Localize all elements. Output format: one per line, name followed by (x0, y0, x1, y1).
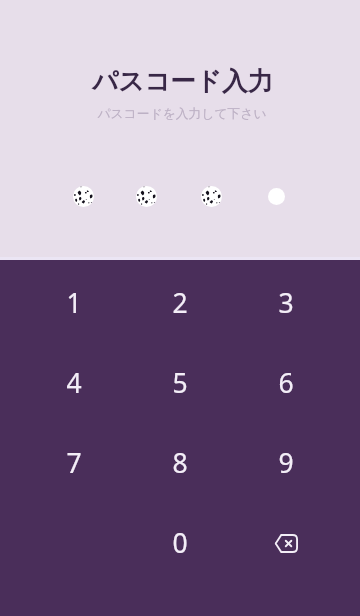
button[interactable]: 9 (233, 423, 339, 503)
staticText: パスコード入力 (92, 65, 273, 97)
staticText: 8 (172, 445, 188, 481)
staticText: 4 (66, 365, 82, 401)
button[interactable]: Backspace (233, 503, 339, 583)
staticText: 6 (278, 365, 294, 401)
staticText: 9 (278, 445, 294, 481)
staticText: 1 (66, 285, 82, 321)
button[interactable]: 4 (21, 343, 127, 423)
staticText: 5 (172, 365, 188, 401)
staticText: 0 (172, 525, 188, 561)
button[interactable]: 7 (21, 423, 127, 503)
staticText: 2 (172, 285, 188, 321)
staticText: 7 (66, 445, 82, 481)
staticText: 3 (278, 285, 294, 321)
button[interactable]: 2 (127, 263, 233, 343)
staticText: パスコードを入力して下さい (97, 106, 267, 122)
button[interactable]: 5 (127, 343, 233, 423)
button[interactable]: 0 (127, 503, 233, 583)
button[interactable]: 6 (233, 343, 339, 423)
button[interactable]: 3 (233, 263, 339, 343)
button[interactable]: 8 (127, 423, 233, 503)
button[interactable]: 1 (21, 263, 127, 343)
